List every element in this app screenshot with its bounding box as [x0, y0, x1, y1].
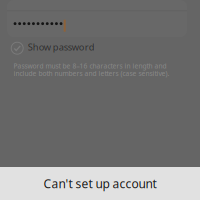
staticText: Password must be 8–16 characters in leng…	[14, 61, 170, 78]
staticText: Show password	[28, 41, 95, 53]
staticText: Can't set up account	[43, 175, 156, 191]
button[interactable]: Show password	[7, 40, 187, 53]
